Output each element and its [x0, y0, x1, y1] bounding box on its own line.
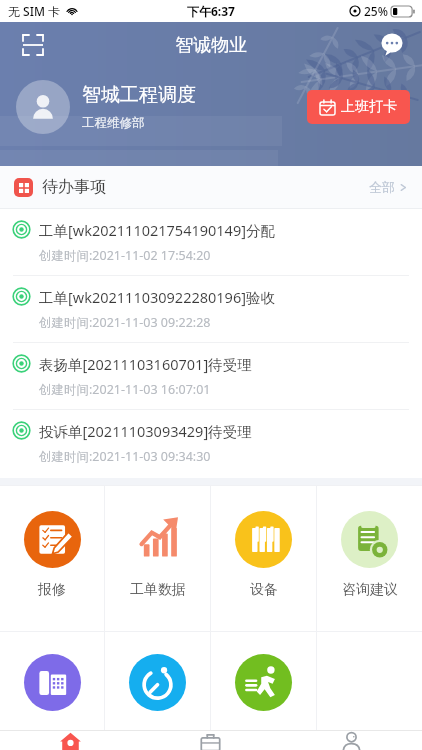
button[interactable]: 报修	[0, 486, 104, 631]
button[interactable]: 工作	[140, 731, 281, 750]
button[interactable]: 功能入口	[105, 632, 210, 730]
staticText: 全部	[369, 179, 395, 195]
button[interactable]: 待办事项	[0, 166, 422, 208]
staticText: 咨询建议	[342, 581, 398, 599]
staticText: 投诉单[20211103093429]待受理	[39, 421, 252, 441]
staticText: 创建时间:2021-11-02 17:54:20	[39, 247, 211, 264]
button[interactable]: 工单[wk202111030922280196]验收	[0, 276, 422, 342]
button[interactable]: 功能入口	[0, 632, 104, 730]
staticText: 设备	[250, 581, 278, 599]
staticText: 报修	[38, 581, 66, 599]
staticText: 工单[wk202111030922280196]验收	[39, 287, 275, 307]
button[interactable]: 工单数据	[105, 486, 210, 631]
button[interactable]: 设备	[211, 486, 316, 631]
button[interactable]: 投诉单[20211103093429]待受理	[0, 410, 422, 476]
button[interactable]: 上班打卡	[307, 90, 410, 124]
staticText: 创建时间:2021-11-03 09:34:30	[39, 448, 211, 465]
staticText: 创建时间:2021-11-03 16:07:01	[39, 381, 211, 398]
staticText: 待办事项	[42, 177, 106, 197]
button[interactable]: 消息	[376, 29, 408, 61]
staticText: 上班打卡	[341, 98, 397, 116]
staticText: 工单[wk202111021754190149]分配	[39, 220, 275, 240]
button[interactable]: 工单[wk202111021754190149]分配	[0, 209, 422, 275]
button[interactable]: 功能入口	[211, 632, 316, 730]
staticText: 智城工程调度	[82, 83, 196, 107]
button[interactable]: 扫一扫	[16, 28, 50, 62]
button[interactable]: 智城工程调度	[16, 80, 422, 134]
staticText: 无 SIM 卡	[8, 3, 61, 19]
button[interactable]: 咨询建议	[317, 486, 422, 631]
staticText: 25%	[364, 3, 388, 19]
staticText: 创建时间:2021-11-03 09:22:28	[39, 314, 211, 331]
staticText: 下午6:37	[187, 3, 235, 19]
staticText: 工单数据	[130, 581, 186, 599]
staticText: 表扬单[20211103160701]待受理	[39, 354, 252, 374]
button[interactable]: 表扬单[20211103160701]待受理	[0, 343, 422, 409]
button[interactable]: 我的	[281, 731, 422, 750]
staticText: 智诚物业	[175, 34, 247, 57]
staticText: 工程维修部	[82, 115, 145, 131]
button[interactable]: 首页	[0, 731, 140, 750]
